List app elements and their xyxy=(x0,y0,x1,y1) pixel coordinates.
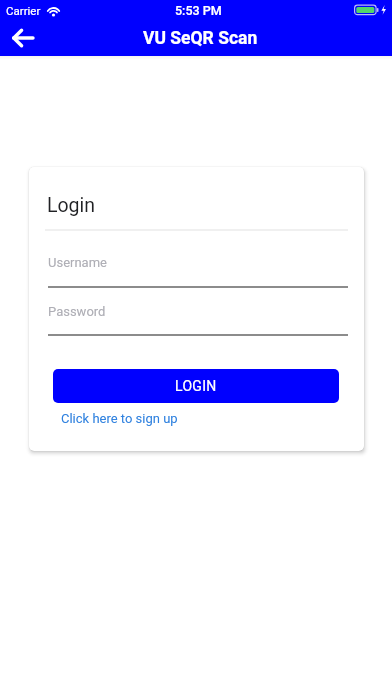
button[interactable]: Click here to sign up xyxy=(58,408,181,429)
staticText: Username xyxy=(48,255,107,270)
staticText: LOGIN xyxy=(175,378,217,394)
staticText: Login xyxy=(47,194,96,217)
staticText: Click here to sign up xyxy=(61,411,178,426)
button[interactable] xyxy=(0,20,46,56)
staticText: 5:53 PM xyxy=(175,3,222,18)
staticText: VU SeQR Scan xyxy=(143,28,258,49)
button[interactable]: LOGIN xyxy=(53,369,339,403)
staticText: Password xyxy=(48,304,106,319)
staticText: Carrier xyxy=(6,4,41,17)
